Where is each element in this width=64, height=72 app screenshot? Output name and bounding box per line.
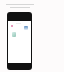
button[interactable]: Phone preview [7, 12, 32, 70]
